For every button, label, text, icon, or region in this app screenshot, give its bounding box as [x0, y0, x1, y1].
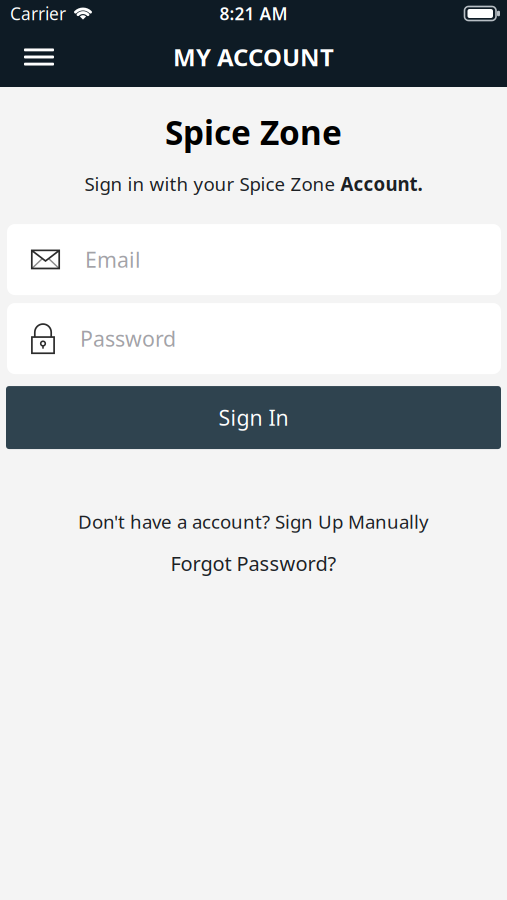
- staticText: Sign In: [218, 403, 288, 432]
- staticText: Carrier: [10, 2, 66, 25]
- button[interactable]: Email: [0, 224, 507, 295]
- staticText: Don't have a account? Sign Up Manually: [78, 509, 429, 534]
- button[interactable]: Menu: [0, 48, 66, 66]
- staticText: Sign in with your Spice Zone Account.: [84, 171, 422, 196]
- button[interactable]: Sign In: [0, 386, 507, 449]
- button[interactable]: Forgot Password?: [170, 550, 336, 576]
- staticText: Password: [80, 324, 176, 353]
- button[interactable]: Don't have a account? Sign Up Manually: [78, 509, 429, 534]
- staticText: MY ACCOUNT: [173, 41, 334, 73]
- staticText: Email: [85, 245, 141, 274]
- staticText: 8:21 AM: [219, 2, 287, 25]
- staticText: Spice Zone: [165, 110, 342, 154]
- button[interactable]: Password: [0, 303, 507, 374]
- staticText: Forgot Password?: [170, 550, 336, 576]
